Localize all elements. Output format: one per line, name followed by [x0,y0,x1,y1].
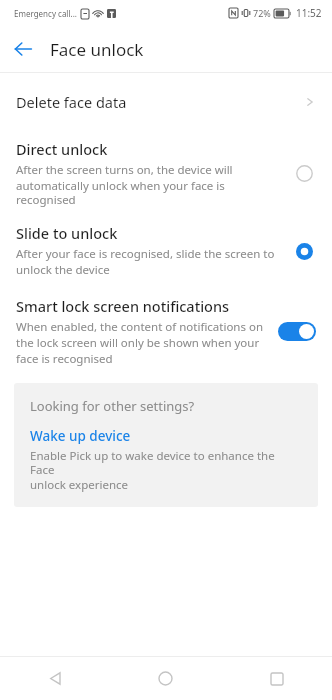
staticText: Face unlock [50,38,144,61]
button[interactable]: Home [110,657,221,700]
staticText: After the screen turns on, the device wi… [16,162,233,178]
staticText: Looking for other settings? [30,397,195,415]
staticText: Enable Pick up to wake device to enhance… [30,448,302,477]
staticText: After your face is recognised, slide the… [16,246,275,262]
button[interactable]: Slide to unlock [0,223,332,278]
staticText: unlock the device [16,262,110,278]
staticText: When enabled, the content of notificatio… [16,319,264,335]
staticText: the lock screen will only be shown when … [16,335,260,351]
staticText: 72% [253,7,271,19]
button[interactable]: Wake up device [30,427,131,445]
button[interactable]: Back [0,657,110,700]
staticText: Direct unlock [16,139,108,159]
staticText: 11:52 [296,6,322,20]
button[interactable]: Delete face data [0,82,332,122]
button[interactable]: Direct unlock [0,139,332,207]
button[interactable]: Smart lock screen notifications toggle [278,322,316,341]
staticText: Emergency call... [14,8,77,19]
staticText: face is recognised [16,351,113,367]
button[interactable]: Back [0,26,46,72]
button[interactable]: Smart lock screen notifications [0,296,332,367]
button[interactable]: Recent apps [221,657,332,700]
staticText: Slide to unlock [16,223,118,243]
staticText: Smart lock screen notifications [16,296,230,316]
staticText: unlock experience [30,477,129,493]
staticText: Wake up device [30,427,131,445]
staticText: Delete face data [16,92,127,112]
staticText: automatically unlock when your face is r… [16,178,282,207]
